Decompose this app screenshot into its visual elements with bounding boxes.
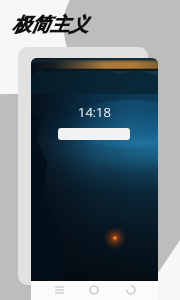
staticText: 14:18 — [78, 103, 111, 121]
staticText: 极简主义 — [12, 13, 88, 37]
